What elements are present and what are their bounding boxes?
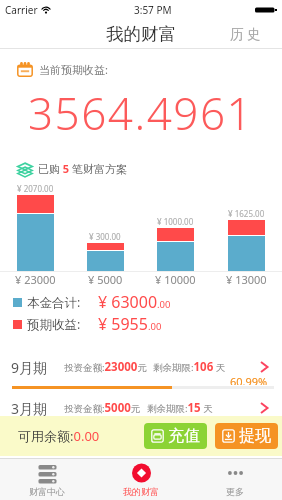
staticText: ¥ 63000.00	[98, 291, 171, 313]
staticText: ¥ 1000.00	[157, 216, 194, 227]
button[interactable]: More	[188, 459, 282, 500]
staticText: ¥ 1625.00	[228, 208, 265, 219]
staticText: 历 史	[230, 25, 261, 43]
staticText: 财富中心	[29, 486, 65, 497]
button[interactable]: 3月期	[0, 397, 282, 419]
staticText: 3564.4961	[28, 83, 254, 143]
staticText: 剩余期限:15 天	[147, 400, 213, 416]
staticText: 我的财富	[106, 23, 176, 45]
staticText: 投资金额:23000元	[64, 359, 147, 375]
staticText: ¥ 300.00	[89, 231, 121, 242]
button[interactable]: Wealth centre	[0, 459, 94, 500]
staticText: 当前预期收益:	[39, 62, 108, 77]
staticText: ¥ 2070.00	[17, 183, 54, 194]
staticText: 可用余额:0.00	[18, 427, 100, 445]
staticText: ¥ 13000	[226, 272, 267, 287]
staticText: 更多	[226, 486, 244, 497]
button[interactable]: 历 史	[220, 20, 270, 48]
staticText: 剩余期限:106 天	[153, 359, 226, 375]
staticText: 3月期	[11, 399, 48, 418]
staticText: 本金合计:	[27, 294, 81, 311]
staticText: 我的财富	[123, 486, 159, 497]
staticText: ¥ 5000	[88, 272, 123, 287]
staticText: 提现	[239, 426, 271, 446]
staticText: 60.99%	[230, 374, 268, 385]
staticText: ¥ 10000	[155, 272, 196, 287]
staticText: Carrier	[5, 3, 38, 17]
staticText: 已购 5 笔财富方案	[38, 161, 128, 176]
staticText: 充值	[168, 426, 200, 446]
button[interactable]: 充值	[144, 423, 207, 449]
button[interactable]: 9月期	[0, 356, 282, 389]
staticText: 投资金额:5000元	[64, 400, 141, 416]
staticText: ¥ 23000	[15, 272, 56, 287]
staticText: 预期收益:	[27, 316, 81, 333]
button[interactable]: My wealth	[94, 459, 188, 500]
staticText: 9月期	[11, 358, 48, 377]
button[interactable]: 提现	[215, 423, 278, 449]
staticText: 3:57 PM	[134, 3, 172, 17]
staticText: ¥ 5955.00	[98, 313, 162, 335]
